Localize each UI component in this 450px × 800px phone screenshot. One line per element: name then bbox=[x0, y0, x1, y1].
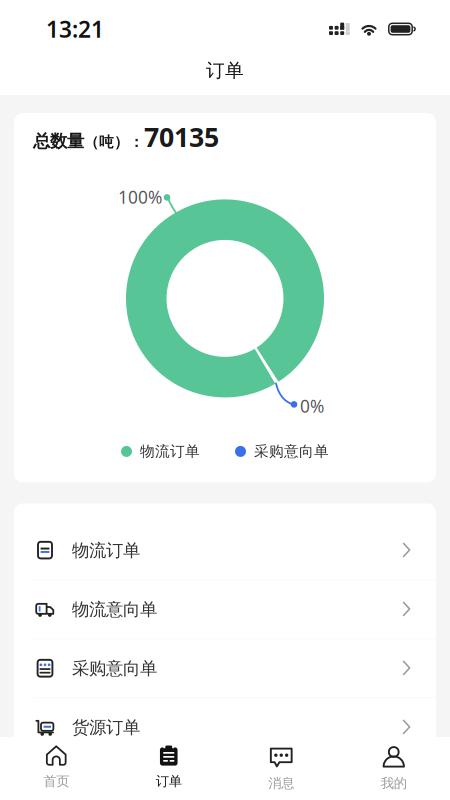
button[interactable]: 首页 bbox=[0, 737, 112, 800]
button[interactable]: 物流意向单 bbox=[14, 580, 436, 639]
staticText: 首页 bbox=[43, 773, 69, 789]
staticText: 物流订单 bbox=[72, 540, 140, 561]
staticText: 我的 bbox=[381, 775, 407, 791]
button[interactable]: 订单 bbox=[112, 737, 225, 800]
staticText: 总数量 bbox=[33, 131, 84, 152]
staticText: （吨） bbox=[84, 133, 129, 151]
staticText: 订单 bbox=[156, 773, 182, 789]
staticText: ： bbox=[129, 133, 144, 151]
staticText: 货源订单 bbox=[72, 717, 140, 738]
button[interactable]: 我的 bbox=[337, 737, 450, 800]
staticText: 13:21 bbox=[46, 14, 104, 44]
button[interactable] bbox=[14, 757, 436, 800]
button[interactable]: 消息 bbox=[225, 737, 337, 800]
staticText: 消息 bbox=[268, 775, 294, 791]
staticText: 订单 bbox=[206, 59, 244, 82]
staticText: 采购意向单 bbox=[254, 442, 329, 460]
button[interactable]: 采购意向单 bbox=[14, 639, 436, 698]
staticText: 物流意向单 bbox=[72, 599, 157, 620]
button[interactable]: 货源订单 bbox=[14, 698, 436, 757]
staticText: 物流订单 bbox=[140, 442, 200, 460]
staticText: 100% bbox=[118, 185, 162, 208]
staticText: 采购意向单 bbox=[72, 658, 157, 679]
staticText: 0% bbox=[300, 394, 324, 417]
button[interactable]: 物流订单 bbox=[14, 521, 436, 580]
staticText: 70135 bbox=[144, 119, 219, 154]
